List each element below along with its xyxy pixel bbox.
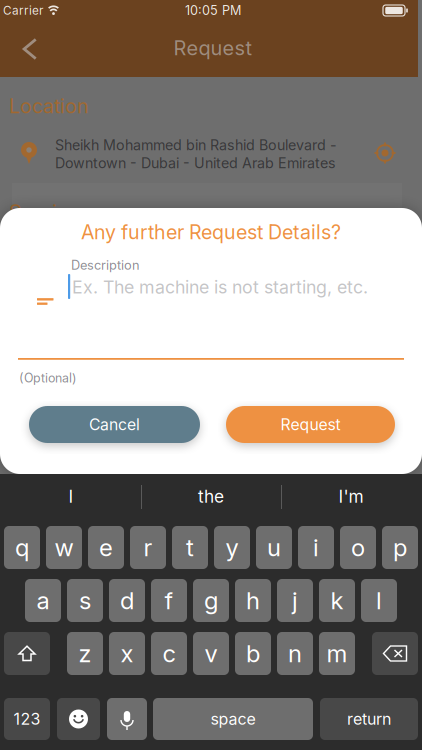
staticText: c [162,639,175,668]
staticText: Ex. The machine is not starting, etc. [72,276,368,298]
button[interactable]: o [340,526,376,569]
staticText: Request [280,415,340,434]
staticText: space [210,709,255,729]
button[interactable]: n [277,632,313,675]
button[interactable]: x [109,632,145,675]
button[interactable]: d [109,579,145,622]
button[interactable]: t [172,526,208,569]
staticText: I [68,486,73,507]
staticText: x [120,639,133,668]
staticText: o [351,533,365,562]
button[interactable]: Use current location [367,135,403,171]
button[interactable]: Delete [372,632,418,675]
button[interactable]: Dictation [107,698,147,740]
button[interactable]: y [214,526,250,569]
staticText: Service [9,200,79,224]
staticText: i [313,533,319,562]
button[interactable]: l [361,579,397,622]
staticText: Any further Request Details? [81,220,341,244]
staticText: Cancel [89,415,140,434]
staticText: r [143,533,152,562]
staticText: w [54,533,73,562]
staticText: p [393,533,407,562]
staticText: g [204,586,218,615]
button[interactable]: Cancel [29,406,200,443]
staticText: b [246,639,260,668]
staticText: Description [71,257,140,273]
button[interactable]: space [153,698,313,740]
staticText: d [120,586,134,615]
button[interactable]: j [277,579,313,622]
staticText: k [330,586,343,615]
button[interactable]: I [1,474,141,519]
button[interactable]: b [235,632,271,675]
button[interactable]: w [46,526,82,569]
button[interactable]: g [193,579,229,622]
staticText: Downtown - Dubai - United Arab Emirates [55,154,336,172]
staticText: v [204,639,217,668]
staticText: s [79,586,91,615]
staticText: z [78,639,91,668]
staticText: h [246,586,260,615]
staticText: e [99,533,113,562]
button[interactable]: z [67,632,103,675]
staticText: Request [173,36,252,60]
button[interactable]: u [256,526,292,569]
button[interactable]: h [235,579,271,622]
staticText: m [326,639,347,668]
button[interactable]: Emoji [57,698,100,740]
button[interactable]: k [319,579,355,622]
button[interactable]: p [382,526,418,569]
staticText: I'm [338,486,363,507]
button[interactable]: Back [8,27,52,71]
staticText: n [288,639,302,668]
staticText: Location [9,94,89,118]
button[interactable]: return [320,698,418,740]
staticText: 10:05 PM [185,3,241,18]
staticText: f [164,586,173,615]
staticText: j [292,586,298,615]
button[interactable]: f [151,579,187,622]
staticText: (Optional) [19,370,77,385]
button[interactable]: 123 [4,698,50,740]
button[interactable]: e [88,526,124,569]
staticText: l [376,586,382,615]
staticText: y [225,533,238,562]
button[interactable]: the [141,474,281,519]
staticText: return [347,709,391,729]
staticText: q [15,533,29,562]
button[interactable]: q [4,526,40,569]
staticText: 123 [13,709,40,729]
button[interactable]: c [151,632,187,675]
staticText: a [36,586,49,615]
staticText: Carrier [3,3,43,18]
button[interactable]: Shift [4,632,50,675]
button[interactable]: a [25,579,61,622]
staticText: u [267,533,281,562]
button[interactable]: v [193,632,229,675]
staticText: Sheikh Mohammed bin Rashid Boulevard - [55,136,337,154]
button[interactable]: m [319,632,355,675]
staticText: the [198,486,224,507]
button[interactable]: I'm [281,474,421,519]
staticText: t [186,533,194,562]
button[interactable]: s [67,579,103,622]
button[interactable]: Request [226,406,395,443]
button[interactable]: i [298,526,334,569]
button[interactable]: r [130,526,166,569]
